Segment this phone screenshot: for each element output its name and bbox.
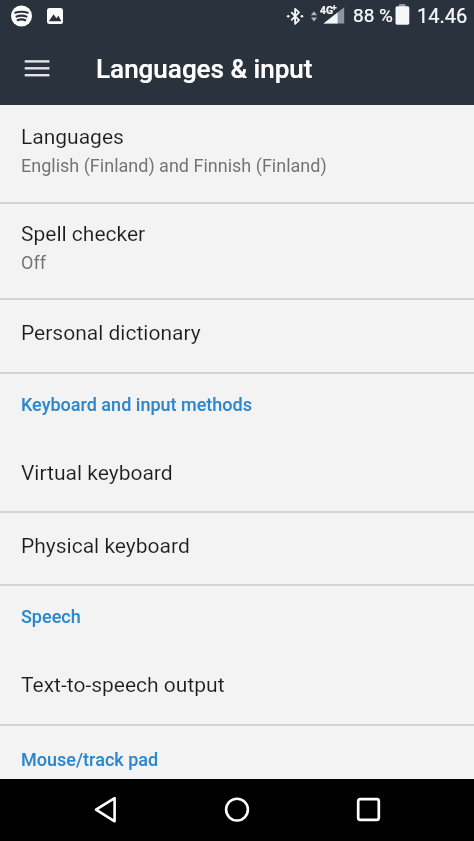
button[interactable]: Languages [0, 105, 474, 202]
button[interactable]: Personal dictionary [0, 298, 474, 372]
staticText: Personal dictionary [21, 321, 201, 346]
button[interactable]: Physical keyboard [0, 511, 474, 584]
button[interactable]: Text-to-speech output [0, 650, 474, 724]
staticText: Keyboard and input methods [21, 394, 253, 415]
button[interactable]: Spell checker [0, 202, 474, 298]
staticText: Off [21, 252, 46, 273]
staticText: Languages & input [96, 54, 313, 84]
staticText: 4G [320, 4, 334, 16]
staticText: 14.46 [417, 4, 468, 27]
staticText: English (Finland) and Finnish (Finland) [21, 155, 327, 176]
staticText: Physical keyboard [21, 534, 190, 559]
staticText: Mouse/track pad [21, 749, 159, 770]
staticText: Spell checker [21, 222, 146, 247]
button[interactable]: Virtual keyboard [0, 438, 474, 511]
button[interactable] [16, 44, 64, 92]
button[interactable] [213, 786, 261, 834]
staticText: Text-to-speech output [21, 673, 225, 698]
staticText: Languages [21, 125, 124, 150]
staticText: 88 % [353, 4, 393, 26]
staticText: + [332, 3, 337, 13]
staticText: Speech [21, 606, 81, 627]
staticText: Virtual keyboard [21, 461, 173, 486]
button[interactable] [82, 786, 130, 834]
button[interactable] [344, 786, 392, 834]
